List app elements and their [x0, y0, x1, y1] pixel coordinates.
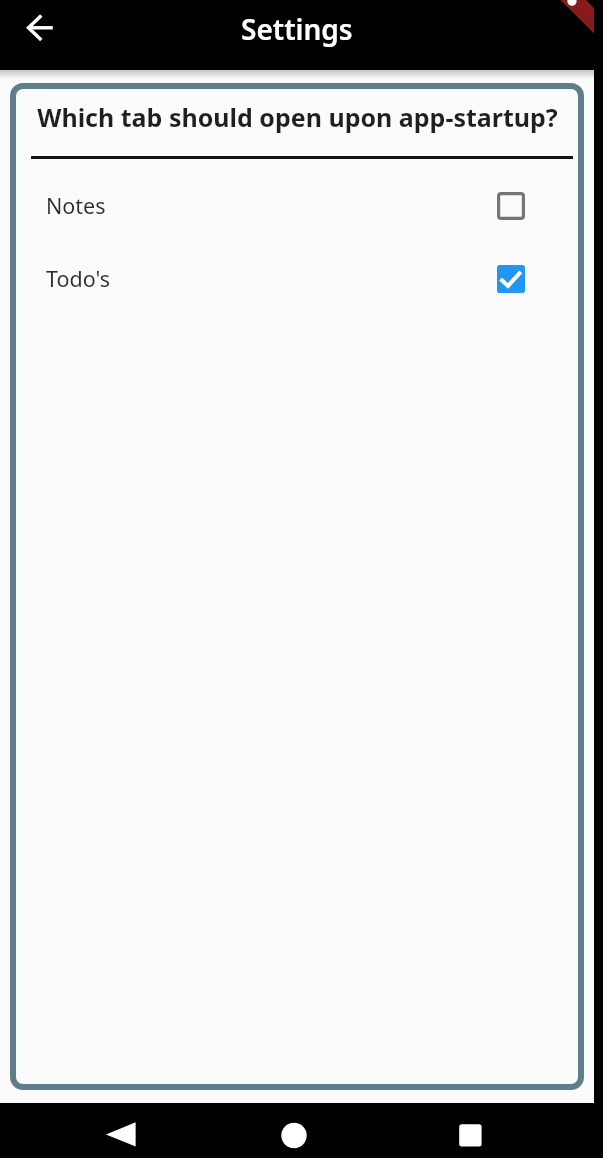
button[interactable]: Todo's [27, 242, 577, 315]
button[interactable] [445, 1120, 495, 1156]
staticText: Todo's [46, 264, 110, 293]
button[interactable] [26, 13, 56, 43]
button[interactable]: Notes [27, 169, 577, 242]
staticText: Settings [241, 10, 353, 48]
button[interactable] [269, 1120, 319, 1156]
staticText: Which tab should open upon app-startup? [37, 100, 558, 134]
staticText: Notes [46, 191, 106, 220]
button[interactable] [96, 1120, 146, 1156]
